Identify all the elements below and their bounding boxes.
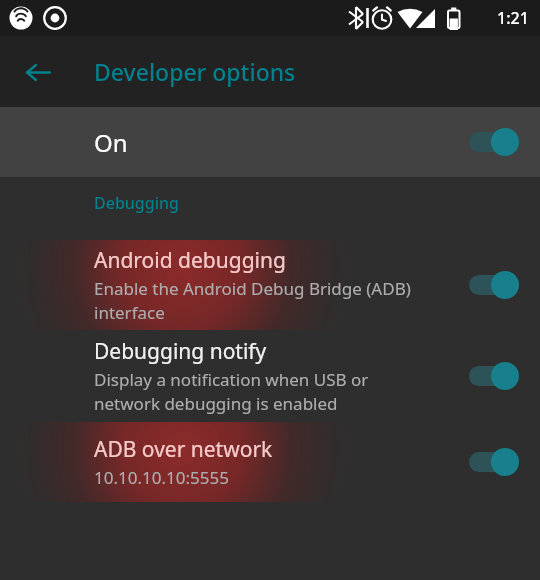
button[interactable]: Back	[12, 46, 64, 98]
staticText: Enable the Android Debug Bridge (ADB) in…	[94, 277, 411, 324]
staticText: Debugging	[94, 192, 179, 214]
button[interactable]: On	[0, 107, 540, 177]
staticText: 1:21	[497, 7, 529, 29]
staticText: Debugging notify	[94, 337, 267, 366]
staticText: Developer options	[94, 56, 296, 87]
staticText: ADB over network	[94, 435, 273, 464]
button[interactable]: Debugging notify	[0, 330, 540, 422]
button[interactable]: ADB over network	[0, 422, 540, 502]
staticText: Display a notification when USB or netwo…	[94, 368, 369, 415]
staticText: On	[94, 126, 128, 159]
staticText: 10.10.10.10:5555	[94, 466, 229, 489]
button[interactable]: Android debugging	[0, 240, 540, 330]
staticText: Android debugging	[94, 246, 286, 275]
